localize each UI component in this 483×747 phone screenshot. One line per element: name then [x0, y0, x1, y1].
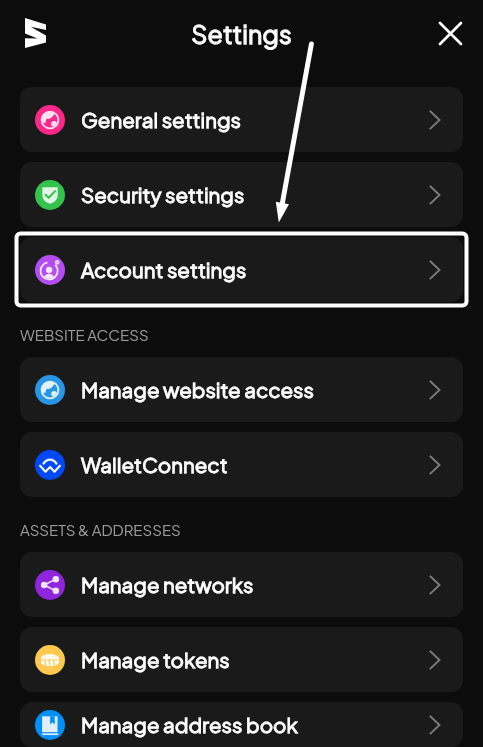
button[interactable]: Manage website access: [20, 357, 463, 422]
staticText: Security settings: [81, 182, 245, 208]
button[interactable]: Close: [428, 11, 472, 55]
staticText: Account settings: [81, 257, 247, 283]
staticText: ASSETS & ADDRESSES: [20, 520, 181, 539]
staticText: WalletConnect: [81, 452, 228, 478]
staticText: General settings: [81, 107, 242, 133]
button[interactable]: WalletConnect: [20, 432, 463, 497]
button[interactable]: Manage networks: [20, 552, 463, 617]
staticText: Manage website access: [81, 377, 314, 403]
staticText: Settings: [191, 18, 292, 49]
button[interactable]: Manage address book: [20, 702, 463, 747]
button[interactable]: Manage tokens: [20, 627, 463, 692]
staticText: Manage address book: [81, 712, 298, 738]
staticText: Manage tokens: [81, 647, 230, 673]
button[interactable]: App logo: [11, 9, 59, 57]
button[interactable]: General settings: [20, 87, 463, 152]
staticText: Manage networks: [81, 572, 254, 598]
button[interactable]: Account settings: [20, 237, 463, 302]
staticText: WEBSITE ACCESS: [20, 325, 149, 344]
button[interactable]: Security settings: [20, 162, 463, 227]
